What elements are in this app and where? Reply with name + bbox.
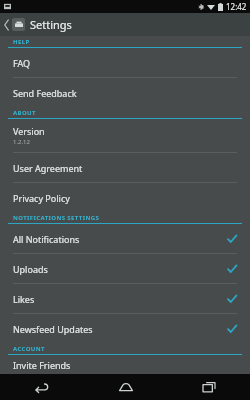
button[interactable]: Back (0, 374, 84, 400)
staticText: Likes (13, 293, 35, 305)
button[interactable]: Back (0, 13, 250, 36)
other: Likes enabled (226, 293, 237, 304)
other: All Notifications enabled (226, 233, 237, 244)
staticText: Invite Friends (13, 359, 71, 371)
staticText: NOTIFICATIONS SETTINGS (13, 214, 100, 222)
staticText: 12:42 (226, 1, 247, 12)
staticText: ABOUT (13, 109, 36, 117)
staticText: ACCOUNT (13, 345, 45, 353)
staticText: HELP (13, 38, 30, 46)
other: Uploads enabled (226, 263, 237, 274)
button[interactable]: Newsfeed Updates (0, 314, 250, 343)
button[interactable]: Uploads (0, 254, 250, 283)
staticText: Settings (30, 17, 72, 32)
staticText: FAQ (13, 57, 31, 69)
button[interactable]: Recent apps (167, 374, 250, 400)
other: Newsfeed Updates enabled (226, 323, 237, 334)
button[interactable]: FAQ (0, 48, 250, 77)
button[interactable]: Privacy Policy (0, 183, 250, 212)
staticText: Send Feedback (13, 87, 77, 99)
button[interactable]: Send Feedback (0, 78, 250, 107)
other: Back (4, 20, 9, 30)
staticText: 1.2.12 (13, 138, 30, 146)
staticText: Privacy Policy (13, 192, 70, 204)
button[interactable]: All Notifications (0, 224, 250, 253)
staticText: Newsfeed Updates (13, 323, 93, 335)
button[interactable]: User Agreement (0, 153, 250, 182)
staticText: Uploads (13, 263, 48, 275)
button[interactable]: Invite Friends (0, 355, 250, 374)
button[interactable]: Home (84, 374, 167, 400)
button[interactable]: Likes (0, 284, 250, 313)
staticText: Version (13, 125, 45, 137)
staticText: All Notifications (13, 233, 80, 245)
staticText: User Agreement (13, 162, 83, 174)
button[interactable]: Version (0, 119, 250, 152)
